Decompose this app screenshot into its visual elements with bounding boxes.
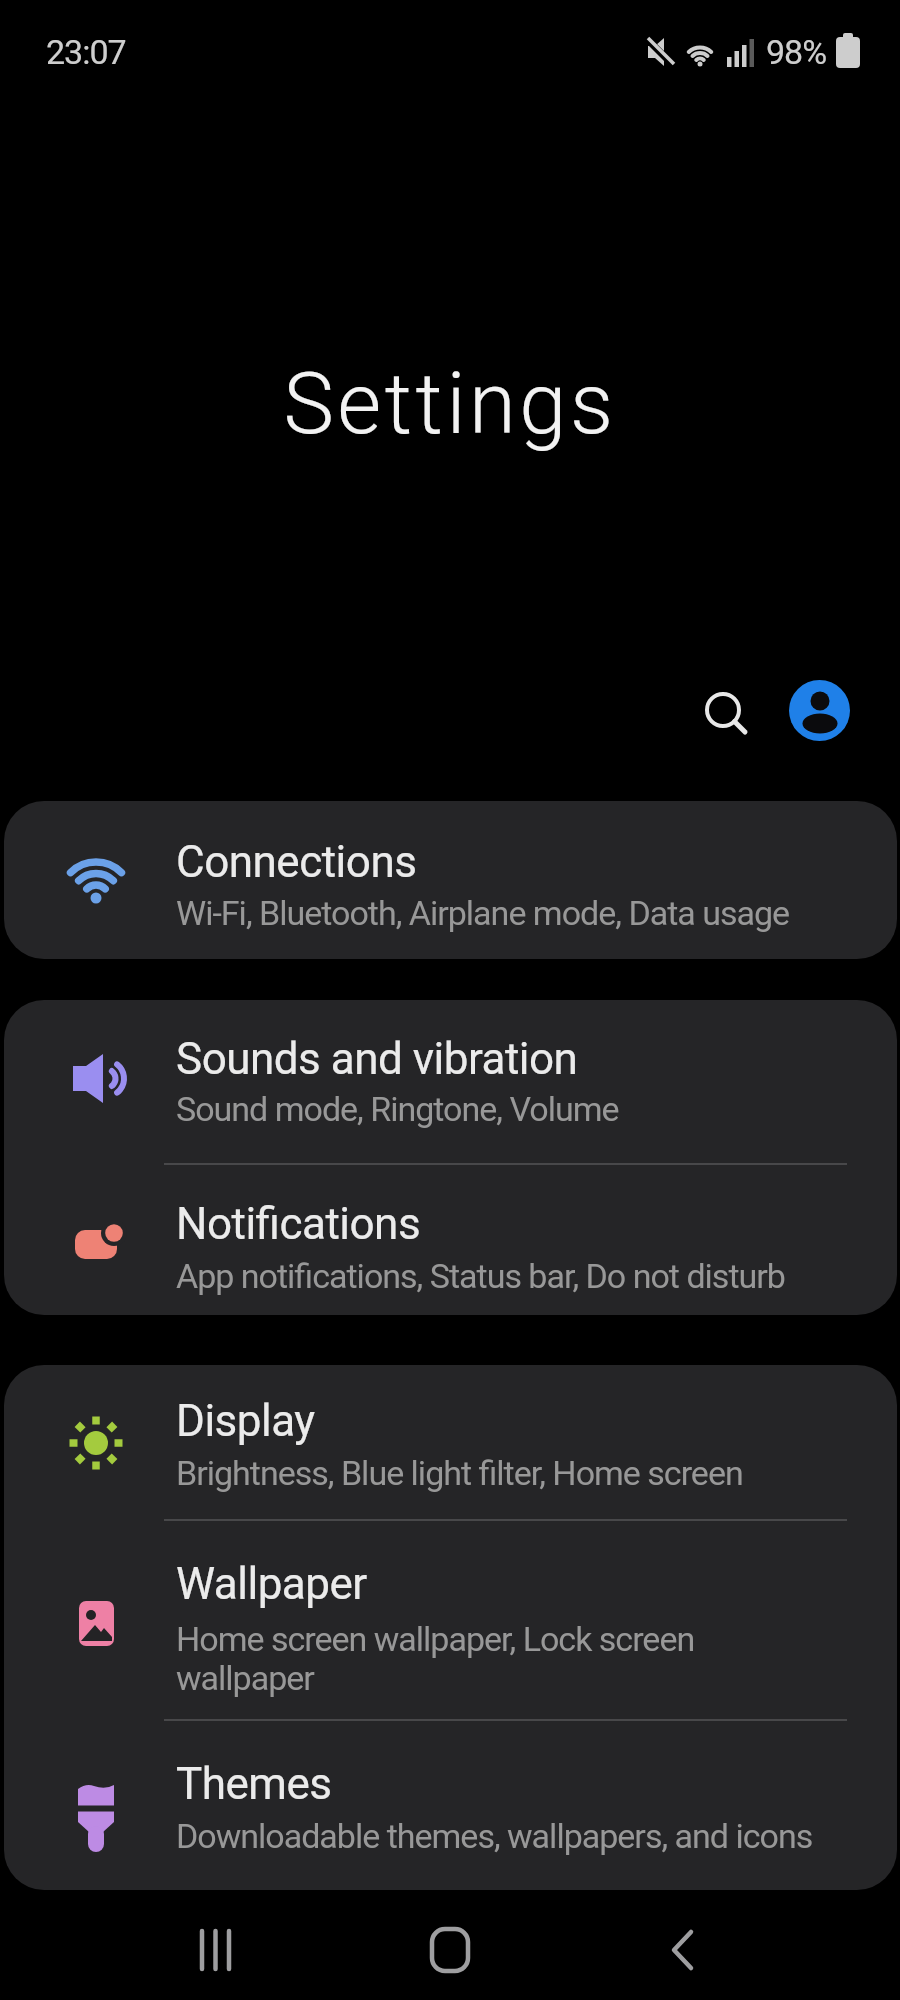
staticText: Themes bbox=[176, 1758, 332, 1810]
staticText: Notifications bbox=[176, 1198, 421, 1250]
staticText: Home screen wallpaper, Lock screen wallp… bbox=[176, 1619, 741, 1698]
button[interactable] bbox=[170, 1920, 260, 1980]
button[interactable] bbox=[4, 801, 897, 959]
button[interactable] bbox=[4, 1521, 897, 1721]
staticText: Brightness, Blue light filter, Home scre… bbox=[176, 1453, 743, 1493]
button[interactable] bbox=[405, 1920, 495, 1980]
staticText: 23:07 bbox=[46, 32, 126, 72]
staticText: Connections bbox=[176, 836, 417, 888]
button[interactable] bbox=[640, 1920, 730, 1980]
staticText: App notifications, Status bar, Do not di… bbox=[176, 1256, 785, 1296]
button[interactable] bbox=[4, 1163, 897, 1315]
staticText: Wi-Fi, Bluetooth, Airplane mode, Data us… bbox=[176, 893, 790, 933]
staticText: Settings bbox=[0, 354, 900, 454]
button[interactable] bbox=[789, 680, 850, 741]
button[interactable] bbox=[693, 680, 753, 740]
staticText: Sounds and vibration bbox=[176, 1033, 578, 1085]
staticText: 98% bbox=[766, 32, 827, 72]
staticText: Downloadable themes, wallpapers, and ico… bbox=[176, 1816, 813, 1856]
staticText: Wallpaper bbox=[176, 1558, 367, 1610]
staticText: Sound mode, Ringtone, Volume bbox=[176, 1089, 619, 1129]
button[interactable] bbox=[4, 1721, 897, 1890]
button[interactable] bbox=[4, 1365, 897, 1521]
staticText: Display bbox=[176, 1395, 315, 1447]
button[interactable] bbox=[4, 1000, 897, 1163]
